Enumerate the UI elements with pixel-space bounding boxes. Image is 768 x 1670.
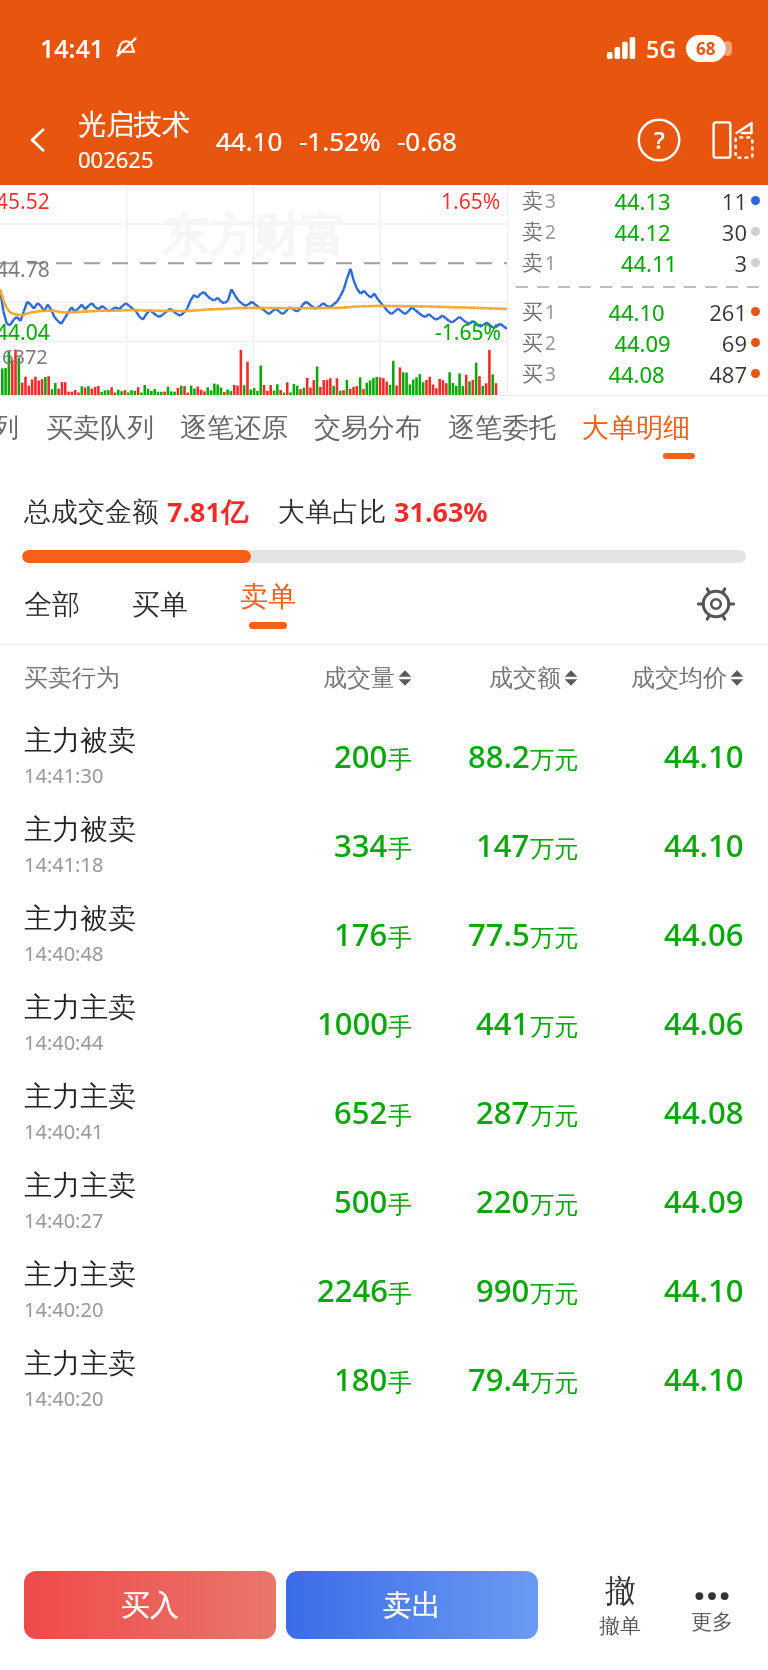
button[interactable]: Help [626,107,692,173]
button[interactable]: 列 [0,411,33,445]
button[interactable]: Back [0,95,78,185]
button[interactable]: 逐笔还原 [167,411,301,445]
staticText: 万元 [530,834,578,864]
button[interactable]: 逐笔委托 [435,411,569,445]
staticText: 652 [334,1091,388,1133]
button[interactable]: 大单明细 [569,411,696,445]
staticText: 手 [388,834,412,864]
button[interactable]: Split screen [698,105,768,175]
staticText: 撤单 [599,1613,641,1639]
staticText: 买卖行为 [24,663,239,693]
button[interactable]: 成交额 [412,663,578,693]
button[interactable]: 全部 [24,587,80,622]
staticText: 卖出 [383,1587,441,1624]
staticText: 220 [476,1180,530,1222]
button[interactable]: 交易分布 [301,411,435,445]
staticText: 44.13 [564,186,721,216]
staticText: 主力主卖 [24,1168,136,1203]
staticText: 7.81亿 [167,493,248,530]
button[interactable]: 主力主卖 [0,1334,768,1423]
staticText: 买入 [121,1587,179,1624]
button[interactable]: 主力被卖 [0,889,768,978]
staticText: 79.4 [468,1358,530,1400]
staticText: 44.04 [0,318,50,347]
staticText: -0.68 [397,123,457,158]
staticText: 主力被卖 [24,723,136,758]
staticText: 44.10 [664,1358,744,1400]
staticText: 44.10 [664,1269,744,1311]
staticText: 45.52 [0,187,50,216]
button[interactable]: 卖出 [286,1571,538,1639]
staticText: 万元 [530,1101,578,1131]
staticText: 44.11 [564,248,734,278]
staticText: 14:40:27 [24,1207,104,1234]
button[interactable]: 主力被卖 [0,711,768,800]
staticText: 14:41 [40,31,105,65]
button[interactable]: 主力主卖 [0,1156,768,1245]
staticText: 3 [545,188,556,214]
button[interactable]: 成交量 [239,663,412,693]
button[interactable]: 买单 [132,587,188,622]
button[interactable]: 更多 [666,1575,758,1635]
button[interactable]: 卖 [508,185,768,395]
staticText: 002625 [78,144,154,174]
staticText: 44.10 [664,735,744,777]
staticText: 44.06 [664,913,744,955]
staticText: 44.78 [0,255,50,284]
staticText: 手 [388,1190,412,1220]
staticText: 3 [734,248,747,278]
staticText: 44.08 [664,1091,744,1133]
staticText: 主力主卖 [24,1079,136,1114]
staticText: 万元 [530,1012,578,1042]
staticText: 手 [388,1368,412,1398]
button[interactable]: 东方财富 [0,185,507,395]
staticText: 44.09 [564,328,721,358]
button[interactable]: Settings [688,576,744,632]
staticText: ? [654,123,665,156]
staticText: 261 [709,297,747,327]
staticText: 44.10 [664,824,744,866]
staticText: 14:40:44 [24,1029,104,1056]
staticText: 万元 [530,923,578,953]
staticText: 69 [721,328,747,358]
staticText: 万元 [530,745,578,775]
staticText: 31.63% [394,493,488,530]
button[interactable]: 主力主卖 [0,1067,768,1156]
staticText: 44.12 [564,217,721,247]
staticText: 287 [476,1091,530,1133]
button[interactable]: 买入 [24,1571,276,1639]
staticText: 500 [334,1180,388,1222]
staticText: 2246 [317,1269,388,1311]
staticText: 14:40:20 [24,1296,104,1323]
button[interactable]: 主力主卖 [0,978,768,1067]
staticText: 2 [545,330,556,356]
button[interactable]: 卖单 [240,579,296,629]
staticText: 列 [0,411,19,445]
staticText: 卖 [522,219,543,245]
staticText: -1.65% [435,318,501,347]
button[interactable]: 成交均价 [578,663,744,693]
button[interactable]: 撤 [574,1571,666,1639]
staticText: 成交额 [489,663,561,693]
staticText: 14:40:48 [24,940,104,967]
staticText: 487 [709,359,747,389]
staticText: 交易分布 [314,411,422,445]
button[interactable]: 主力被卖 [0,800,768,889]
staticText: 主力被卖 [24,901,136,936]
button[interactable]: 买卖队列 [33,411,167,445]
staticText: 更多 [691,1609,733,1635]
staticText: 334 [334,824,388,866]
staticText: 手 [388,1012,412,1042]
staticText: 1.65% [441,187,501,216]
button[interactable]: 主力主卖 [0,1245,768,1334]
staticText: 11 [721,186,747,216]
staticText: 总成交金额 [24,495,159,529]
staticText: 68 [696,37,716,60]
staticText: 30 [721,217,747,247]
staticText: 44.08 [564,359,709,389]
staticText: 180 [334,1358,388,1400]
staticText: 176 [334,913,388,955]
staticText: 卖单 [240,579,296,614]
staticText: 万元 [530,1279,578,1309]
button[interactable]: 光启技术 [78,107,190,174]
